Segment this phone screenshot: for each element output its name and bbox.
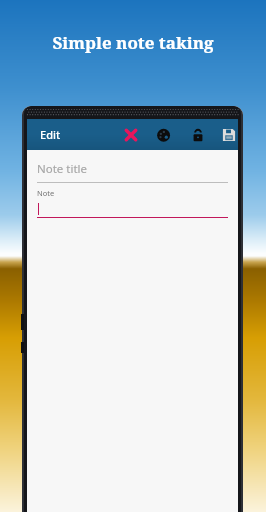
staticText: Note title <box>37 161 88 177</box>
button[interactable]: Change colour <box>153 124 175 146</box>
button[interactable]: Edit <box>27 123 67 146</box>
button[interactable]: Lock note <box>187 124 209 146</box>
staticText: Simple note taking <box>52 31 214 54</box>
staticText: Edit <box>40 127 61 142</box>
button[interactable]: Save note <box>220 124 238 146</box>
button[interactable]: Note title <box>37 161 228 183</box>
staticText: Note <box>37 188 55 198</box>
button[interactable]: Delete note <box>120 124 142 146</box>
button[interactable]: Note <box>37 188 228 218</box>
